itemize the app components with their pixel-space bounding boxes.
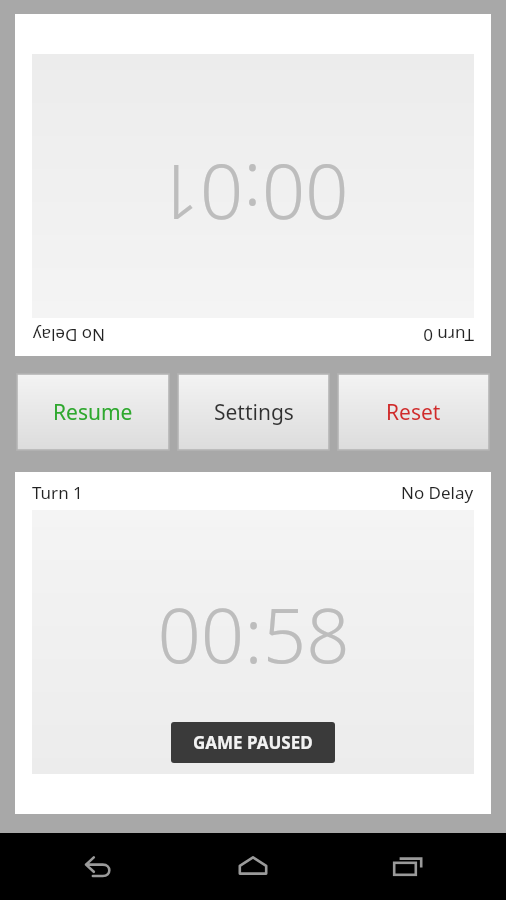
staticText: Turn 0 [423, 324, 474, 347]
button[interactable]: Resume [17, 374, 169, 450]
staticText: GAME PAUSED [193, 731, 313, 754]
button[interactable]: Reset [338, 374, 489, 450]
button[interactable]: Home [225, 839, 281, 895]
staticText: 00:58 [157, 582, 350, 686]
button[interactable]: Recent apps [380, 839, 436, 895]
button[interactable]: Turn 1 [15, 472, 491, 814]
staticText: No Delay [401, 481, 474, 504]
staticText: 00:01 [156, 142, 349, 246]
button[interactable]: Back [70, 839, 126, 895]
staticText: Resume [53, 398, 133, 427]
staticText: Settings [214, 398, 294, 427]
staticText: No Delay [32, 324, 105, 347]
staticText: Reset [386, 398, 441, 427]
button[interactable]: Settings [178, 374, 329, 450]
staticText: Turn 1 [32, 481, 83, 504]
button[interactable]: Turn 0 [15, 14, 491, 356]
